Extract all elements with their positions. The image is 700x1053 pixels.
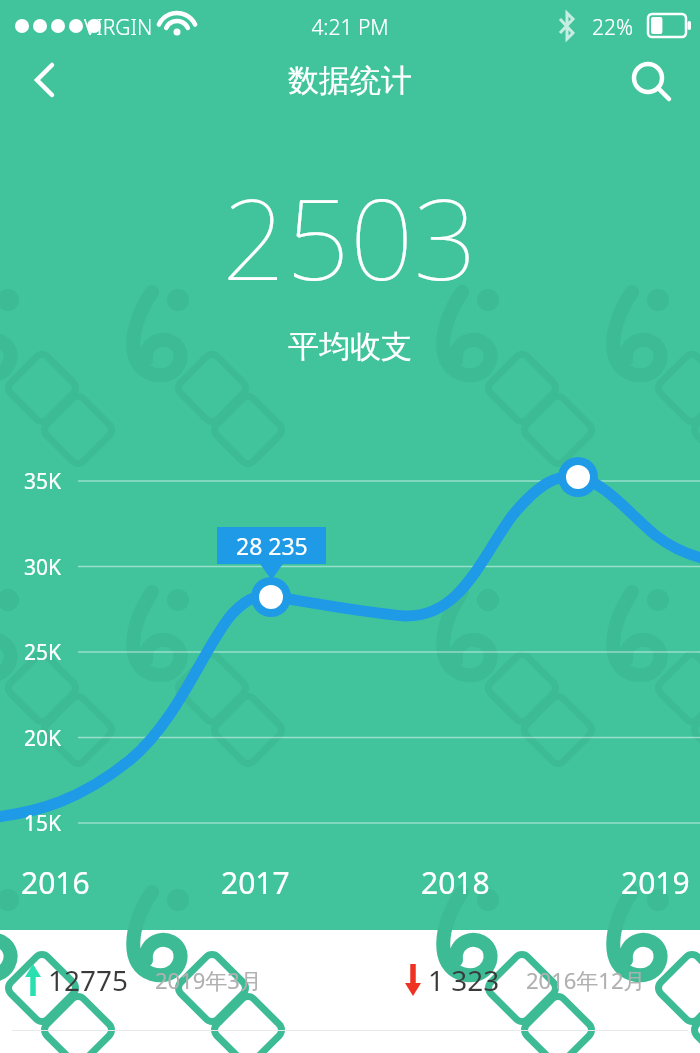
staticText: 数据统计 xyxy=(288,61,412,100)
staticText: 2016 xyxy=(21,862,90,903)
staticText: 15K xyxy=(24,809,62,838)
staticText: 28 235 xyxy=(236,530,308,561)
button[interactable]: 12775 xyxy=(22,961,262,999)
staticText: 22% xyxy=(592,13,634,42)
staticText: 2017 xyxy=(221,862,290,903)
staticText: 20K xyxy=(24,724,62,753)
button[interactable]: 1 323 xyxy=(402,961,646,999)
button[interactable]: Back xyxy=(16,52,72,108)
staticText: 2019年3月 xyxy=(155,965,262,995)
staticText: 2018 xyxy=(421,862,490,903)
button[interactable]: Search xyxy=(622,52,678,108)
staticText: 2019 xyxy=(621,862,690,903)
staticText: VIRGIN xyxy=(84,13,153,42)
staticText: 35K xyxy=(24,467,62,496)
staticText: 平均收支 xyxy=(288,327,412,366)
staticText: 30K xyxy=(24,553,62,582)
staticText: 1 323 xyxy=(428,961,500,999)
staticText: 12775 xyxy=(48,961,129,999)
staticText: 4:21 PM xyxy=(0,13,700,42)
staticText: 2016年12月 xyxy=(526,965,646,995)
staticText: 2503 xyxy=(222,160,478,313)
staticText: 25K xyxy=(24,638,62,667)
